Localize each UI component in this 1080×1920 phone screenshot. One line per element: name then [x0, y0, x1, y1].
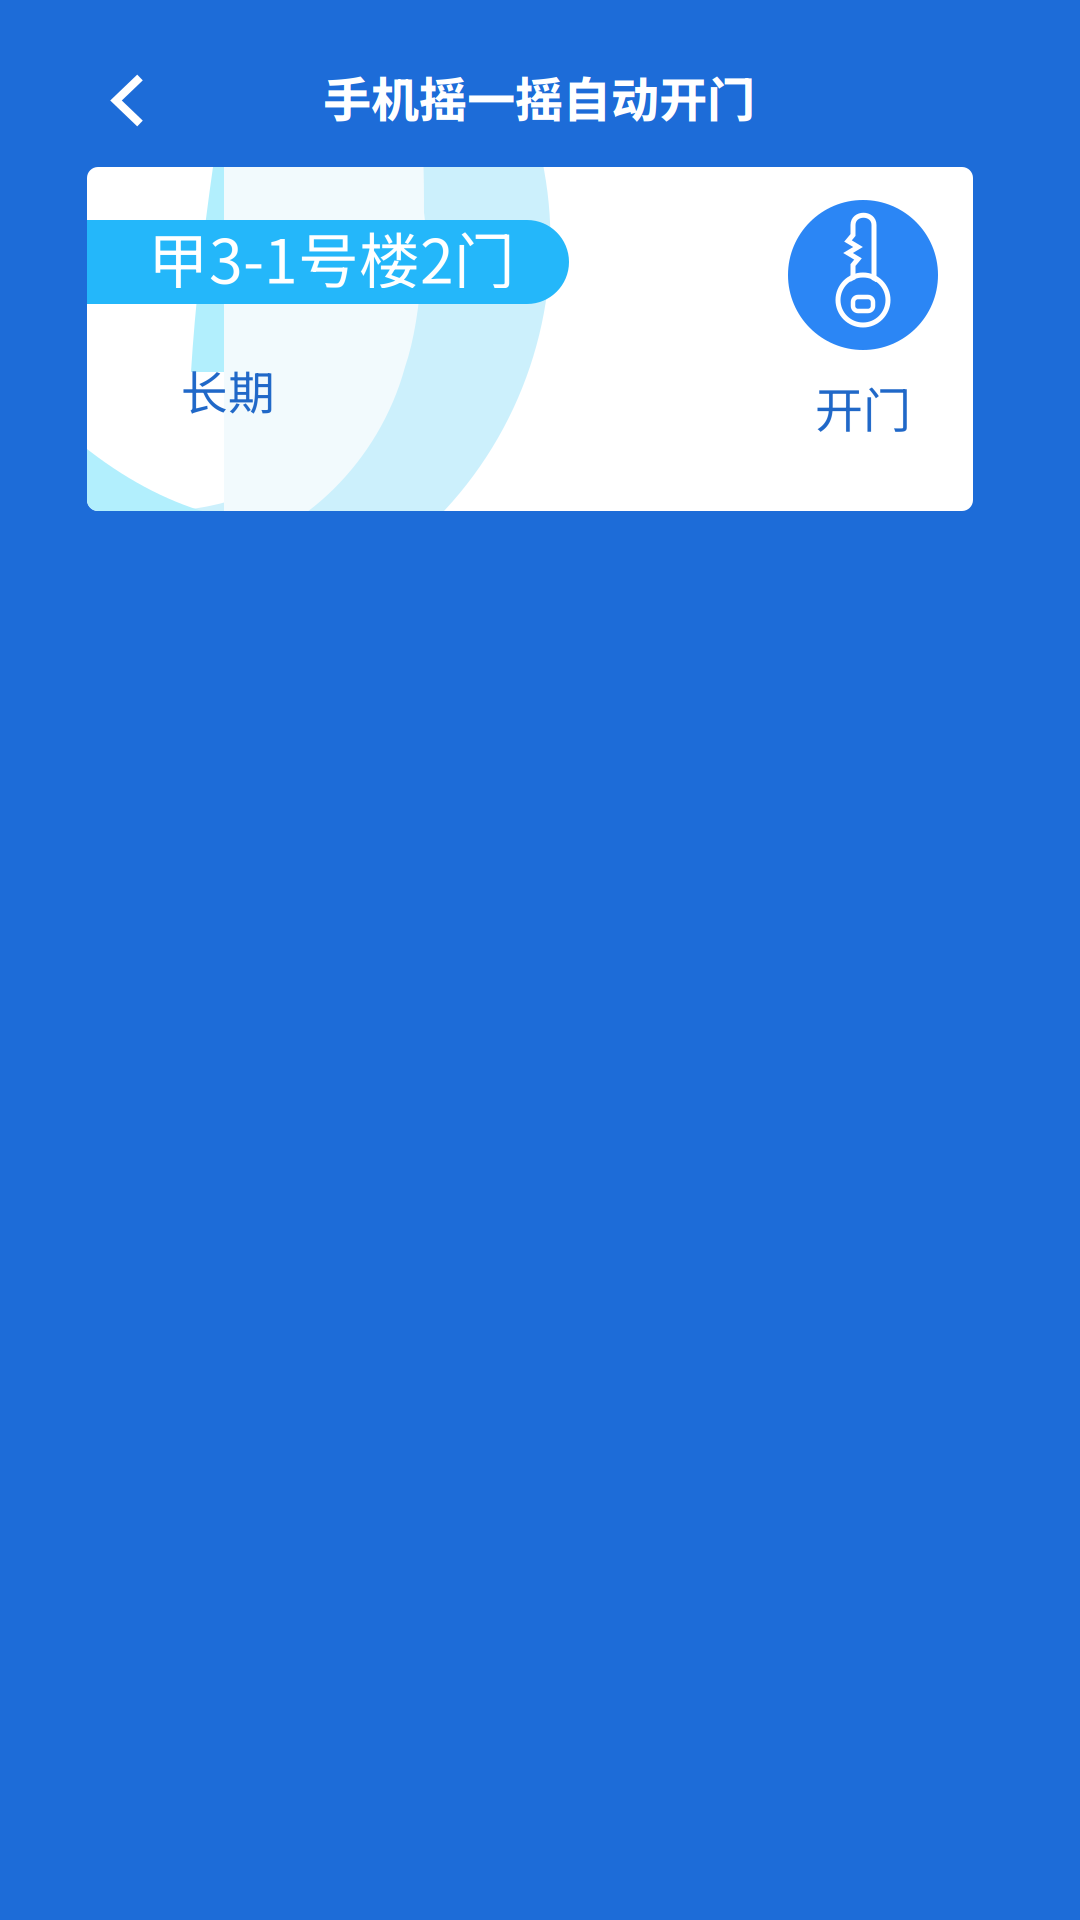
staticText: 甲3-1号楼2门 — [148, 213, 515, 301]
button[interactable]: 甲3-1号楼2门 — [87, 167, 973, 511]
button[interactable]: Back — [83, 35, 173, 131]
staticText: 长期 — [181, 356, 275, 424]
staticText: 手机摇一摇自动开门 — [323, 62, 755, 131]
staticText: 开门 — [815, 372, 911, 441]
button[interactable]: 开门 — [768, 200, 958, 441]
